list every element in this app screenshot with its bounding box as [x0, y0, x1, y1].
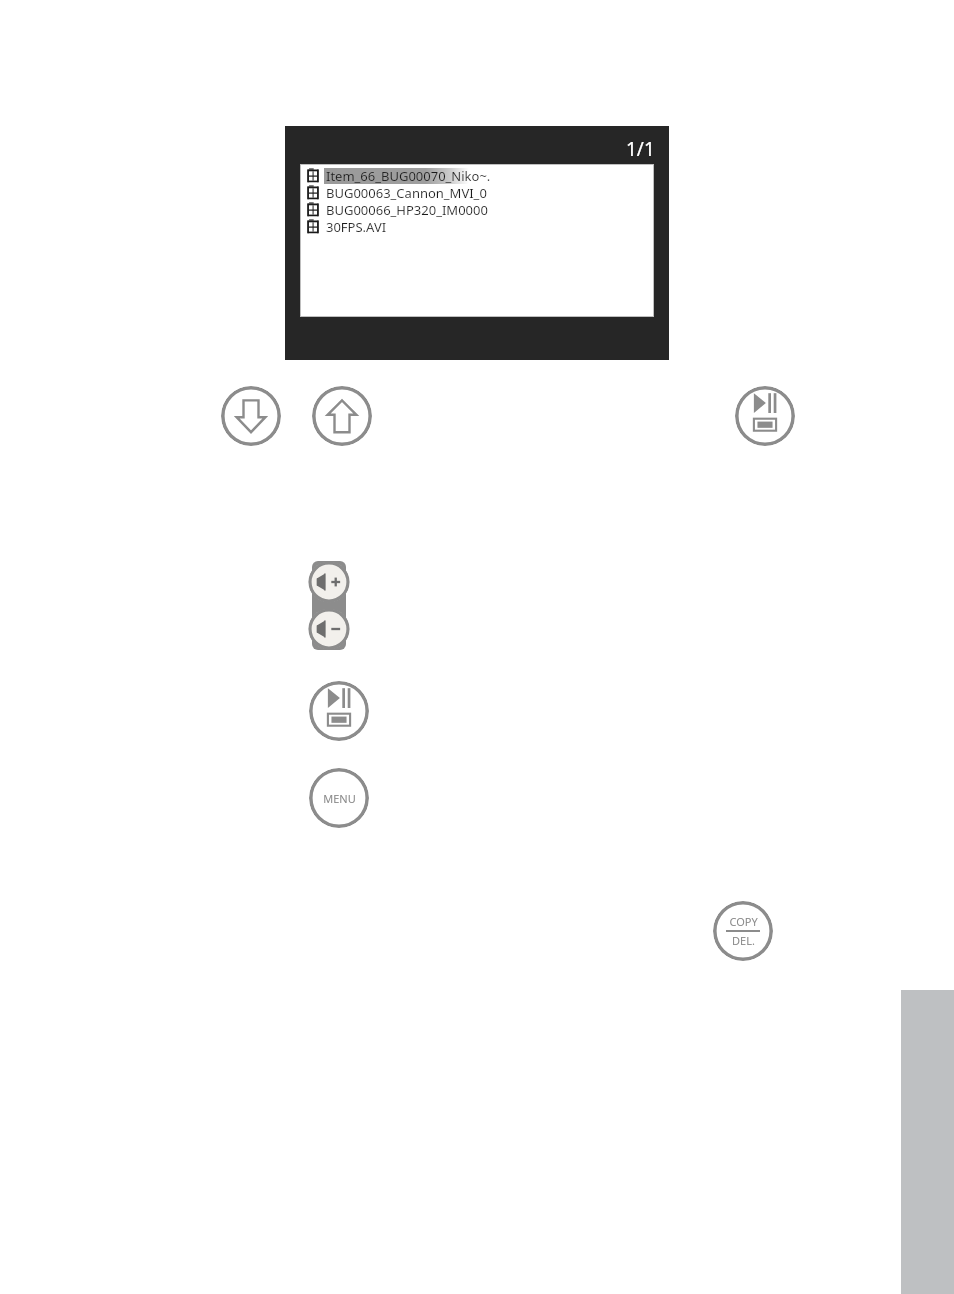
button[interactable]: BUG00066_HP320_IM0000: [304, 201, 488, 218]
button[interactable]: Item_66_BUG00070_Niko~.: [304, 167, 491, 184]
button[interactable]: Copy Delete: [713, 901, 773, 961]
staticText: COPY: [729, 914, 758, 929]
staticText: 1/1: [626, 136, 655, 162]
button[interactable]: Up: [312, 386, 372, 446]
button[interactable]: Down: [221, 386, 281, 446]
staticText: Item_66_BUG00070_Niko~.: [326, 167, 491, 184]
staticText: BUG00063_Cannon_MVI_0: [326, 184, 487, 201]
button[interactable]: Volume up: [308, 561, 350, 603]
button[interactable]: Volume down: [308, 608, 350, 650]
button[interactable]: Menu: [309, 768, 369, 828]
staticText: 30FPS.AVI: [326, 218, 387, 235]
button[interactable]: BUG00063_Cannon_MVI_0: [304, 184, 487, 201]
button[interactable]: 30FPS.AVI: [304, 218, 387, 235]
button[interactable]: Play Pause: [309, 681, 369, 741]
staticText: MENU: [323, 791, 356, 806]
staticText: DEL.: [732, 933, 755, 948]
staticText: BUG00066_HP320_IM0000: [326, 201, 488, 218]
button[interactable]: Play Pause: [735, 386, 795, 446]
